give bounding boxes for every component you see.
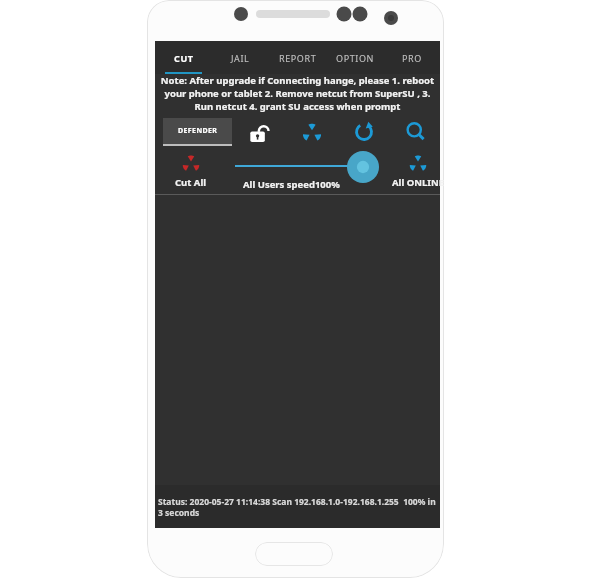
staticText: REPORT	[279, 52, 317, 64]
button[interactable]: Unlock	[245, 117, 275, 147]
button[interactable]: REPORT	[269, 41, 326, 74]
staticText: All Users speed100%	[243, 178, 340, 191]
button[interactable]: CUT	[155, 41, 212, 74]
staticText: Note: After upgrade if Connecting hange,…	[157, 74, 438, 113]
button[interactable]: DEFENDER	[163, 118, 232, 144]
button[interactable]: JAIL	[212, 41, 269, 74]
staticText: DEFENDER	[178, 126, 218, 136]
staticText: JAIL	[231, 52, 250, 64]
button[interactable]: Cut	[297, 117, 327, 147]
staticText: PRO	[402, 52, 422, 64]
button[interactable]: PRO	[383, 41, 440, 74]
staticText: Cut All	[175, 176, 207, 189]
button[interactable]: OPTION	[326, 41, 383, 74]
button[interactable]: Speed slider	[347, 151, 379, 183]
staticText: OPTION	[336, 52, 374, 64]
button[interactable]: Refresh	[349, 117, 379, 147]
button[interactable]: All ONLINE	[388, 151, 448, 194]
staticText: All ONLINE	[392, 176, 444, 189]
staticText: CUT	[174, 52, 194, 64]
staticText: Status: 2020-05-27 11:14:38 Scan 192.168…	[158, 496, 437, 518]
button[interactable]: Search	[401, 117, 431, 147]
button[interactable]: Cut All	[161, 151, 221, 194]
